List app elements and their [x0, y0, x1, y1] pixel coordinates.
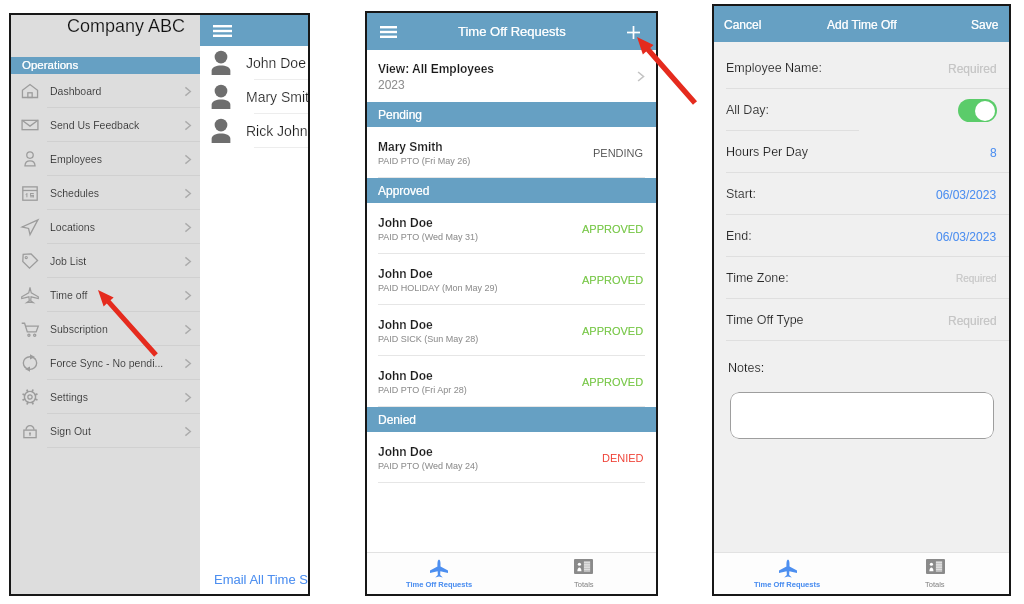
button[interactable]: Start:: [714, 173, 1009, 215]
button[interactable]: Locations: [11, 210, 200, 244]
staticText: Settings: [50, 391, 181, 403]
staticText: Schedules: [50, 187, 181, 199]
staticText: Sign Out: [50, 425, 181, 437]
staticText: View: All Employees: [378, 62, 495, 75]
staticText: 06/03/2023: [936, 188, 997, 201]
staticText: Denied: [378, 413, 417, 426]
staticText: Required: [948, 314, 997, 327]
staticText: Hours Per Day: [726, 145, 990, 159]
button[interactable]: Add: [618, 17, 648, 47]
staticText: John Doe: [378, 445, 433, 458]
button[interactable]: John Doe: [367, 432, 656, 483]
staticText: Totals: [574, 580, 594, 588]
staticText: John Doe: [378, 369, 433, 382]
staticText: DENIED: [602, 452, 644, 464]
staticText: 8: [990, 146, 997, 159]
staticText: PAID PTO (Wed May 31): [378, 232, 479, 242]
staticText: Locations: [50, 221, 181, 233]
button[interactable]: Rick Johnson: [200, 114, 308, 148]
button[interactable]: All Day toggle: [958, 99, 997, 122]
staticText: Time Off Requests: [406, 580, 473, 588]
staticText: 2023: [378, 78, 405, 91]
button[interactable]: View: All Employees: [367, 50, 656, 102]
staticText: Mary Smith: [246, 89, 308, 105]
staticText: PAID SICK (Sun May 28): [378, 334, 479, 344]
staticText: Subscription: [50, 323, 181, 335]
button[interactable]: [730, 392, 994, 439]
button[interactable]: Employee Name:: [714, 47, 1009, 89]
staticText: Send Us Feedback: [50, 119, 181, 131]
button[interactable]: Send Us Feedback: [11, 108, 200, 142]
staticText: APPROVED: [582, 274, 644, 286]
button[interactable]: Menu: [200, 15, 308, 46]
button[interactable]: Force Sync - No pendi...: [11, 346, 200, 380]
staticText: John Doe: [246, 55, 306, 71]
button[interactable]: Time Off Requests: [367, 553, 511, 594]
staticText: Add Time Off: [827, 18, 897, 31]
staticText: Employee Name:: [726, 61, 948, 75]
button[interactable]: John Doe: [367, 356, 656, 407]
button[interactable]: Job List: [11, 244, 200, 278]
button[interactable]: Totals: [861, 553, 1009, 594]
button[interactable]: Save: [971, 18, 1009, 31]
button[interactable]: John Doe: [367, 203, 656, 254]
staticText: John Doe: [378, 216, 433, 229]
staticText: Job List: [50, 255, 181, 267]
staticText: PAID PTO (Fri May 26): [378, 156, 471, 166]
staticText: John Doe: [378, 318, 433, 331]
button[interactable]: All Day:: [714, 89, 1009, 131]
staticText: End:: [726, 229, 936, 243]
staticText: All Day:: [726, 103, 958, 117]
staticText: Time Off Requests: [754, 580, 821, 588]
staticText: Start:: [726, 187, 936, 201]
staticText: Totals: [925, 580, 945, 588]
staticText: APPROVED: [582, 223, 644, 235]
button[interactable]: Schedules: [11, 176, 200, 210]
button[interactable]: Dashboard: [11, 74, 200, 108]
button[interactable]: Employees: [11, 142, 200, 176]
button[interactable]: John Doe: [367, 254, 656, 305]
staticText: Required: [956, 273, 997, 284]
staticText: Force Sync - No pendi...: [50, 357, 181, 369]
staticText: 06/03/2023: [936, 230, 997, 243]
button[interactable]: Hours Per Day: [714, 131, 1009, 173]
staticText: Required: [948, 62, 997, 75]
button[interactable]: Sign Out: [11, 414, 200, 448]
staticText: PENDING: [593, 147, 644, 159]
staticText: Email All Time Sheets: [214, 572, 308, 587]
staticText: APPROVED: [582, 376, 644, 388]
button[interactable]: Subscription: [11, 312, 200, 346]
staticText: Rick Johnson: [246, 123, 308, 139]
button[interactable]: John Doe: [200, 46, 308, 80]
button[interactable]: Settings: [11, 380, 200, 414]
button[interactable]: End:: [714, 215, 1009, 257]
button[interactable]: Time Zone:: [714, 257, 1009, 299]
staticText: PAID PTO (Wed May 24): [378, 461, 479, 471]
staticText: APPROVED: [582, 325, 644, 337]
staticText: Approved: [378, 184, 430, 197]
button[interactable]: John Doe: [367, 305, 656, 356]
button[interactable]: Mary Smith: [367, 127, 656, 178]
staticText: Time Zone:: [726, 271, 956, 285]
staticText: Operations: [22, 59, 79, 72]
staticText: PAID HOLIDAY (Mon May 29): [378, 283, 498, 293]
staticText: John Doe: [378, 267, 433, 280]
staticText: Notes:: [728, 361, 765, 375]
button[interactable]: Totals: [511, 553, 656, 594]
button[interactable]: Time Off Requests: [714, 553, 861, 594]
staticText: Time off: [50, 289, 181, 301]
staticText: Employees: [50, 153, 181, 165]
staticText: Time Off Type: [726, 313, 948, 327]
button[interactable]: Time Off Type: [714, 299, 1009, 341]
button[interactable]: Email All Time Sheets: [200, 565, 308, 594]
staticText: Dashboard: [50, 85, 181, 97]
staticText: Pending: [378, 108, 423, 121]
button[interactable]: Time off: [11, 278, 200, 312]
button[interactable]: Menu: [373, 17, 403, 47]
staticText: Company ABC: [67, 16, 186, 36]
staticText: Time Off Requests: [458, 24, 566, 39]
button[interactable]: Cancel: [714, 18, 762, 31]
staticText: Mary Smith: [378, 140, 443, 153]
button[interactable]: Mary Smith: [200, 80, 308, 114]
staticText: PAID PTO (Fri Apr 28): [378, 385, 467, 395]
